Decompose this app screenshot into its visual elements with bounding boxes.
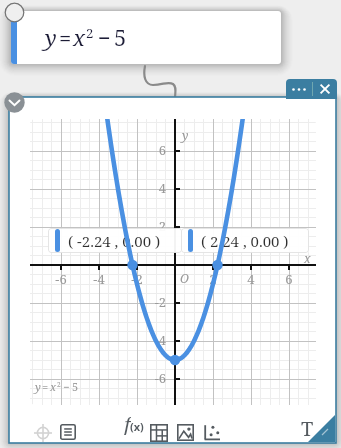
staticText: 5 <box>72 379 79 394</box>
staticText: -4 <box>141 331 166 349</box>
staticText: 2 <box>141 217 166 235</box>
button[interactable]: Image <box>173 420 198 445</box>
staticText: x <box>73 22 86 52</box>
staticText: 2 <box>86 24 94 42</box>
staticText: (x) <box>130 419 144 434</box>
staticText: 4 <box>241 270 261 288</box>
staticText: y <box>182 127 189 143</box>
staticText: − <box>98 22 111 52</box>
staticText: − <box>63 379 70 394</box>
staticText: -2 <box>127 270 147 288</box>
staticText: = <box>42 379 49 394</box>
button[interactable]: Drag handle <box>4 2 25 23</box>
button[interactable]: Functions <box>124 411 145 435</box>
staticText: f <box>124 411 131 435</box>
staticText: 6 <box>141 141 166 159</box>
staticText: -6 <box>51 270 71 288</box>
staticText: 5 <box>114 22 127 52</box>
staticText: x <box>304 250 311 266</box>
staticText: T <box>301 415 314 441</box>
button[interactable]: Algebra view <box>56 420 80 444</box>
staticText: -6 <box>141 369 166 387</box>
button[interactable]: Move graph <box>30 420 56 446</box>
button[interactable]: Close <box>312 79 337 99</box>
staticText: x <box>50 379 57 394</box>
staticText: 2 <box>203 270 223 288</box>
button[interactable]: Table <box>146 420 172 446</box>
button[interactable]: More options <box>286 79 312 99</box>
button[interactable]: y <box>11 11 281 64</box>
staticText: -2 <box>141 293 166 311</box>
button[interactable]: ( 2.24 , 0.00 ) <box>181 228 309 253</box>
staticText: ( 2.24 , 0.00 ) <box>201 231 289 251</box>
staticText: ( -2.24 , 0.00 ) <box>68 231 161 251</box>
staticText: O <box>180 270 189 286</box>
staticText: 2 <box>57 380 61 389</box>
button[interactable]: ( -2.24 , 0.00 ) <box>48 228 182 253</box>
button[interactable]: Collapse graph <box>3 91 26 114</box>
staticText: -4 <box>89 270 109 288</box>
staticText: 6 <box>279 270 299 288</box>
staticText: = <box>59 22 72 52</box>
button[interactable]: Statistics <box>199 420 225 446</box>
staticText: 4 <box>141 179 166 197</box>
staticText: y <box>35 379 41 394</box>
staticText: y <box>45 22 57 52</box>
button[interactable]: Text tool <box>294 415 320 441</box>
